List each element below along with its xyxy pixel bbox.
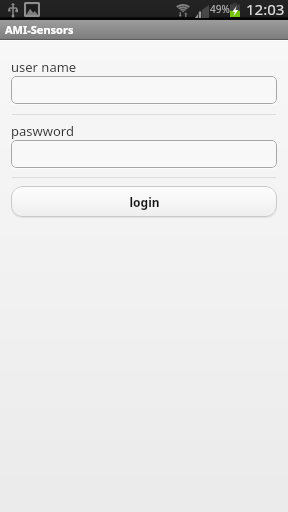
staticText: user name	[11, 58, 77, 76]
button[interactable]: paswword text field	[11, 140, 277, 168]
staticText: login	[129, 194, 160, 210]
button[interactable]: user name text field	[11, 76, 277, 104]
button[interactable]: login	[11, 186, 277, 217]
staticText: AMI-Sensors	[5, 22, 74, 37]
staticText: 12:03	[246, 0, 285, 18]
staticText: paswword	[11, 122, 74, 140]
staticText: 49%	[210, 2, 230, 16]
